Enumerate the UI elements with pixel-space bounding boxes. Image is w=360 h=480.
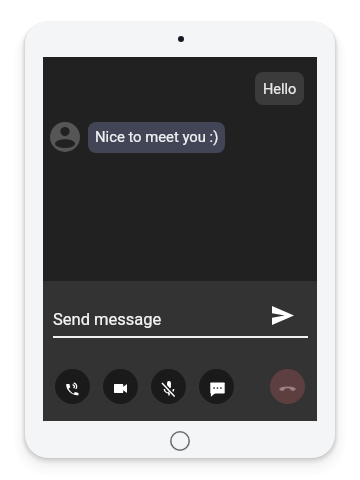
staticText: Nice to meet you :) [95, 128, 219, 145]
button[interactable]: Send message [272, 306, 294, 325]
button[interactable]: Speaker [55, 369, 90, 404]
staticText: Hello [263, 81, 297, 98]
button[interactable]: End call [270, 369, 305, 404]
staticText: Send message [53, 310, 162, 329]
button[interactable]: Hello [255, 72, 304, 105]
button[interactable]: Mute microphone [151, 369, 186, 404]
button[interactable]: Turn camera off [103, 369, 138, 404]
button[interactable]: Nice to meet you :) [88, 122, 225, 153]
button[interactable]: Chat [199, 369, 234, 404]
